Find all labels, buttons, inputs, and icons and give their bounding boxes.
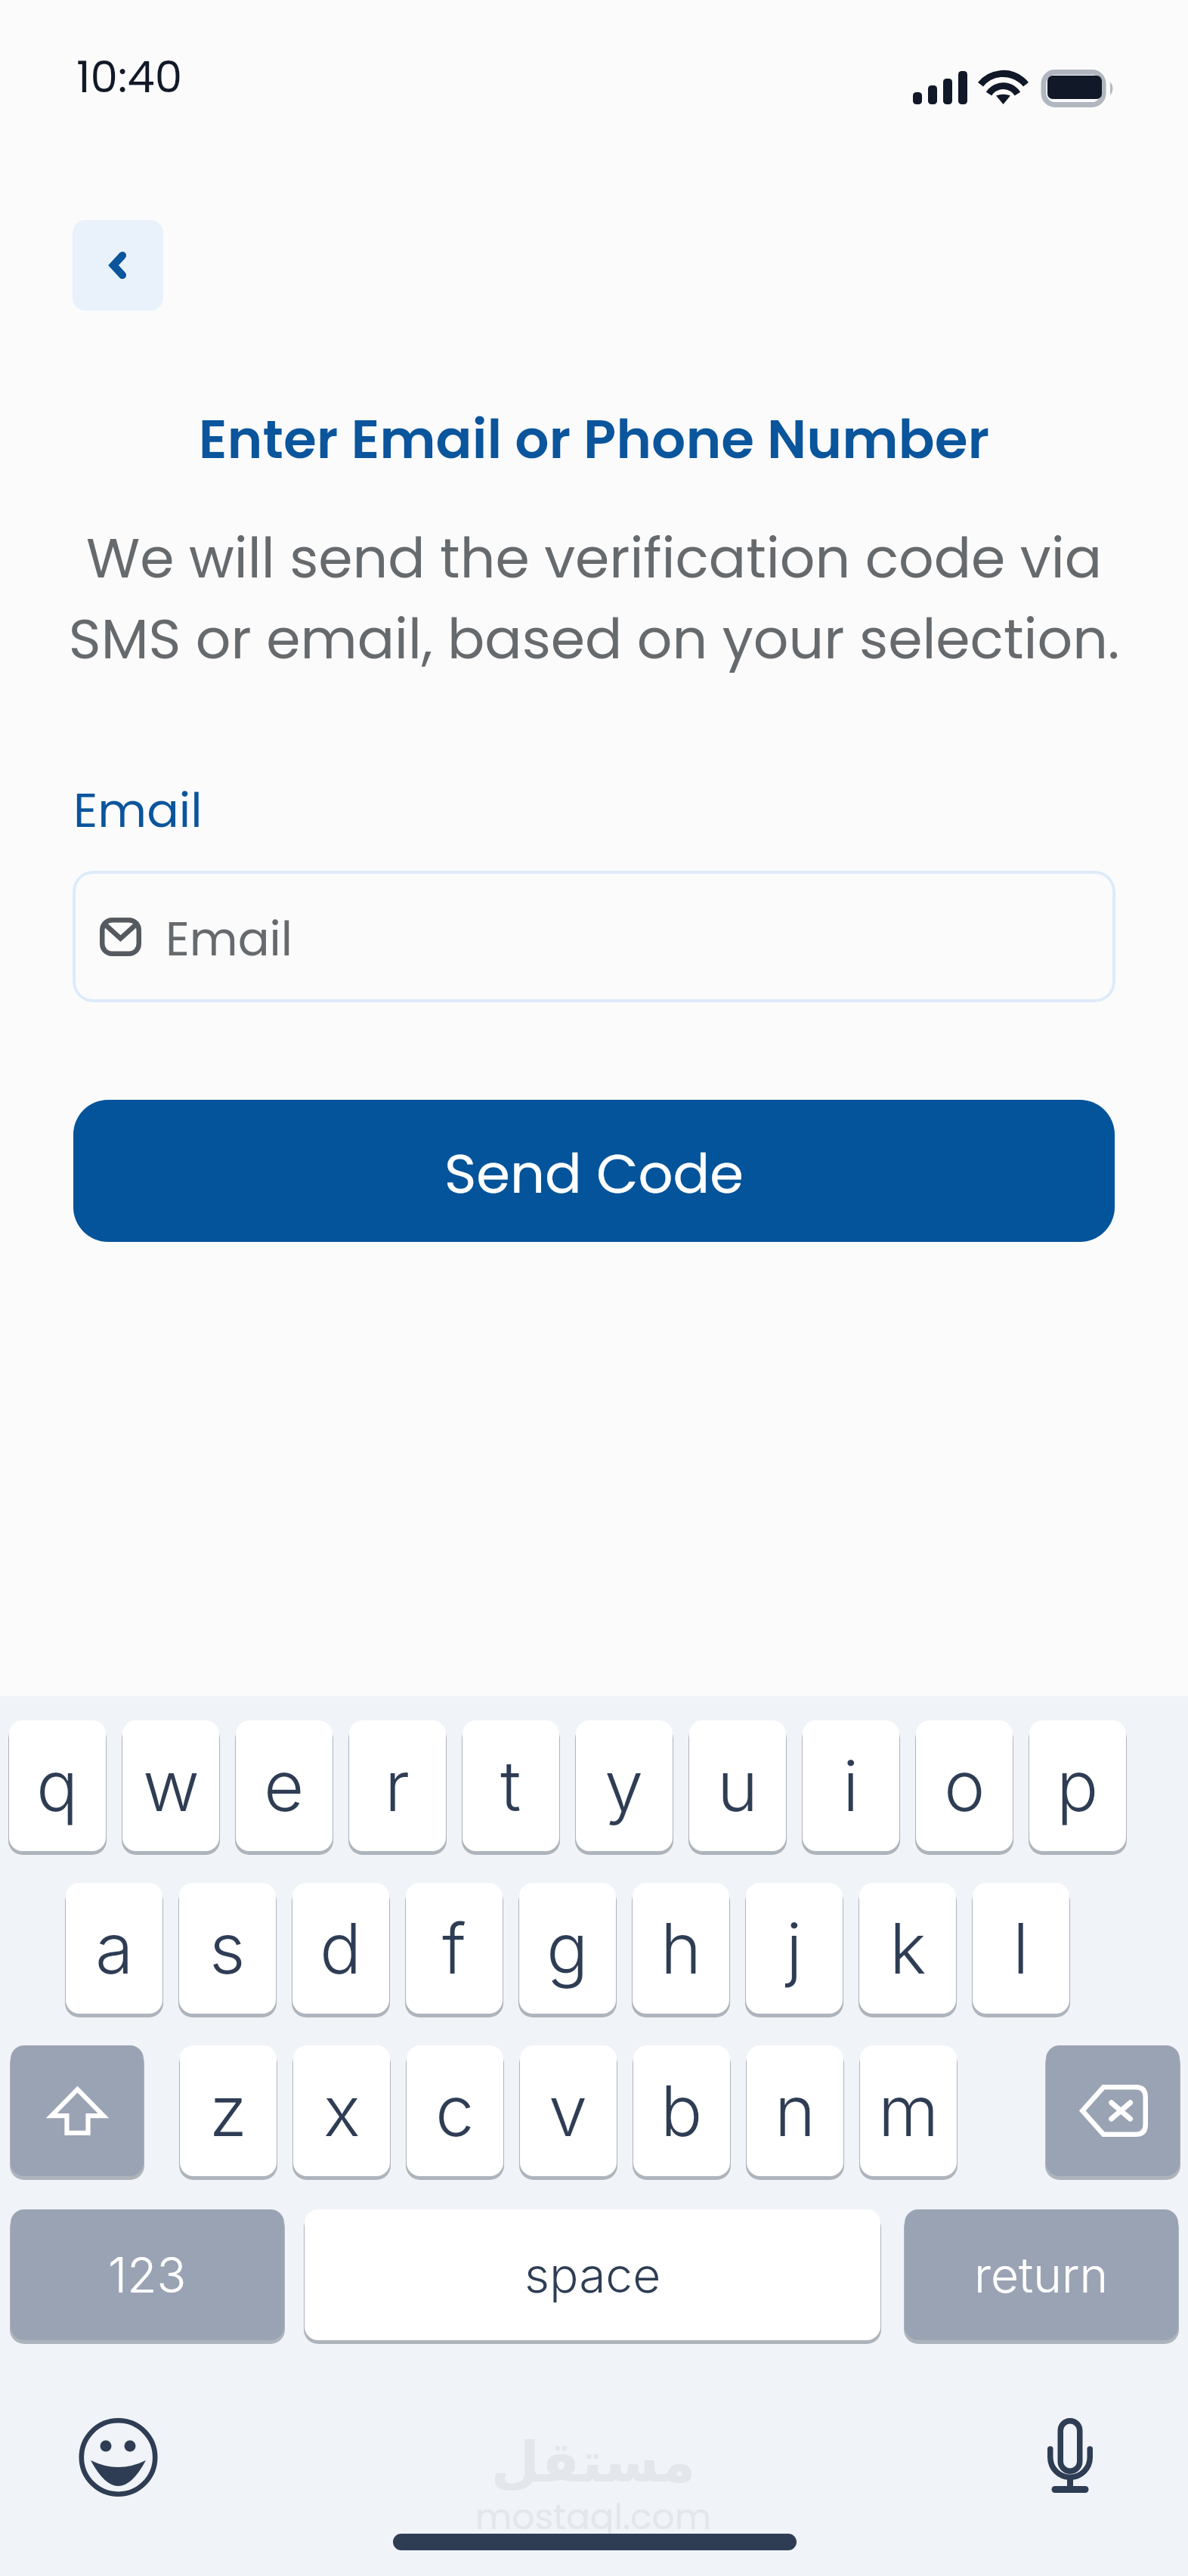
button[interactable]: b	[633, 2045, 730, 2176]
button[interactable]: Shift	[11, 2045, 144, 2176]
staticText: i	[843, 1744, 859, 1828]
button[interactable]: t	[463, 1720, 559, 1851]
staticText: y	[605, 1744, 644, 1828]
staticText: h	[661, 1906, 702, 1990]
button[interactable]: j	[746, 1883, 843, 2014]
staticText: z	[209, 2069, 247, 2153]
staticText: j	[786, 1906, 803, 1990]
staticText: Enter Email or Phone Number	[0, 401, 1188, 476]
staticText: Email	[73, 777, 203, 844]
staticText: o	[944, 1744, 985, 1828]
staticText: return	[974, 2246, 1109, 2304]
button[interactable]: x	[293, 2045, 390, 2176]
staticText: x	[323, 2069, 360, 2153]
button[interactable]: f	[406, 1883, 503, 2014]
button[interactable]: p	[1029, 1720, 1126, 1851]
staticText: r	[385, 1744, 410, 1828]
button[interactable]: return	[905, 2209, 1178, 2340]
button[interactable]: Emoji keyboard	[79, 2418, 158, 2497]
button[interactable]: e	[236, 1720, 333, 1851]
staticText: Send Code	[444, 1135, 744, 1212]
staticText: b	[661, 2069, 703, 2153]
staticText: k	[889, 1906, 927, 1990]
button[interactable]: d	[292, 1883, 389, 2014]
staticText: g	[546, 1906, 589, 1990]
button[interactable]: 123	[11, 2209, 284, 2340]
staticText: 123	[108, 2246, 187, 2304]
staticText: w	[143, 1744, 200, 1828]
staticText: مستقل	[453, 2429, 733, 2494]
button[interactable]: k	[859, 1883, 956, 2014]
button[interactable]: s	[179, 1883, 276, 2014]
staticText: p	[1057, 1744, 1099, 1828]
button[interactable]: y	[576, 1720, 673, 1851]
button[interactable]: r	[349, 1720, 446, 1851]
button[interactable]: Email	[73, 871, 1115, 1002]
staticText: n	[775, 2069, 816, 2153]
staticText: Email	[166, 906, 293, 972]
button[interactable]: z	[180, 2045, 277, 2176]
button[interactable]: space	[305, 2209, 880, 2340]
staticText: l	[1013, 1906, 1029, 1990]
button[interactable]: g	[519, 1883, 616, 2014]
button[interactable]: l	[973, 1883, 1069, 2014]
staticText: s	[209, 1906, 246, 1990]
button[interactable]: a	[66, 1883, 162, 2014]
staticText: m	[878, 2069, 939, 2153]
button[interactable]: Voice input	[1047, 2418, 1094, 2494]
button[interactable]: h	[633, 1883, 729, 2014]
button[interactable]: q	[9, 1720, 106, 1851]
button[interactable]: n	[747, 2045, 843, 2176]
button[interactable]: i	[803, 1720, 899, 1851]
button[interactable]: Send Code	[73, 1100, 1115, 1242]
button[interactable]: w	[122, 1720, 219, 1851]
button[interactable]: o	[916, 1720, 1013, 1851]
button[interactable]: Backspace	[1046, 2045, 1180, 2176]
staticText: u	[717, 1744, 759, 1828]
staticText: e	[264, 1744, 305, 1828]
staticText: c	[435, 2069, 475, 2153]
button[interactable]: v	[520, 2045, 617, 2176]
staticText: t	[500, 1744, 521, 1828]
staticText: d	[320, 1906, 362, 1990]
button[interactable]: m	[860, 2045, 957, 2176]
button[interactable]: c	[407, 2045, 503, 2176]
button[interactable]: Back	[73, 220, 163, 311]
staticText: q	[36, 1744, 79, 1828]
staticText: a	[95, 1906, 134, 1990]
staticText: 10:40	[76, 46, 183, 107]
staticText: space	[524, 2246, 661, 2304]
staticText: f	[442, 1906, 466, 1990]
staticText: mostaql.com	[453, 2492, 733, 2542]
button[interactable]: u	[689, 1720, 786, 1851]
staticText: We will send the verification code via S…	[0, 519, 1188, 678]
staticText: v	[549, 2069, 588, 2153]
